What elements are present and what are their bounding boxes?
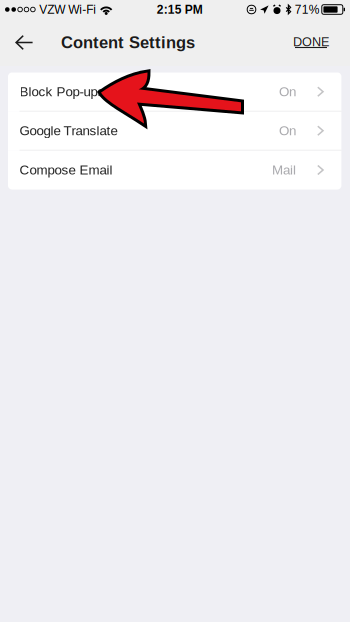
staticText: Google Translate bbox=[19, 123, 117, 138]
staticText: Compose Email bbox=[19, 163, 112, 177]
staticText: On bbox=[279, 84, 296, 99]
staticText: 71% bbox=[295, 3, 320, 16]
button[interactable]: Google Translate bbox=[8, 111, 341, 150]
button[interactable]: Block Pop-ups bbox=[8, 72, 341, 111]
staticText: 2:15 PM bbox=[157, 3, 203, 16]
staticText: DONE bbox=[293, 35, 329, 49]
button[interactable]: Compose Email bbox=[8, 150, 341, 189]
staticText: Block Pop-ups bbox=[19, 84, 104, 99]
staticText: Content Settings bbox=[61, 33, 195, 52]
button[interactable]: DONE bbox=[277, 19, 350, 66]
staticText: VZW Wi-Fi bbox=[39, 3, 96, 16]
staticText: Mail bbox=[272, 163, 296, 177]
button[interactable]: Back bbox=[0, 19, 61, 66]
staticText: On bbox=[279, 123, 296, 138]
